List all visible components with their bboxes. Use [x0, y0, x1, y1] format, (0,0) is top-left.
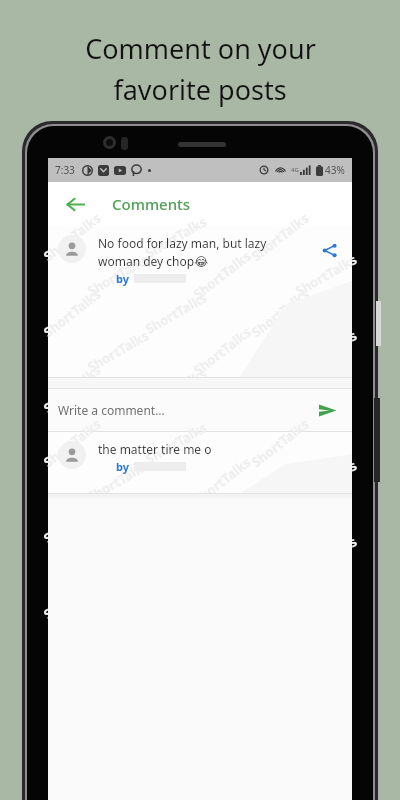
staticText: ShortTalks [40, 285, 104, 341]
staticText: Comment on your [85, 30, 316, 67]
button[interactable]: Share [314, 235, 344, 265]
staticText: ShortTalks [248, 285, 312, 341]
staticText: ShortTalks [84, 456, 152, 506]
button[interactable]: Back [58, 187, 92, 221]
staticText: ShortTalks [292, 326, 360, 376]
staticText: ShortTalks [190, 247, 254, 303]
staticText: favorite posts [113, 71, 287, 108]
staticText: ShortTalks [190, 323, 254, 379]
staticText: ShortTalks [248, 209, 312, 265]
staticText: by [116, 459, 130, 474]
staticText: ShortTalks [292, 250, 360, 300]
button[interactable]: Send [312, 395, 342, 425]
staticText: 4G [291, 166, 299, 174]
button[interactable]: ShortTalks [48, 432, 352, 494]
button[interactable]: ShortTalks [48, 226, 352, 378]
staticText: by [116, 271, 130, 286]
staticText: ShortTalks [248, 415, 312, 471]
staticText: ShortTalks [40, 361, 104, 417]
staticText: ShortTalks [142, 212, 210, 262]
staticText: ShortTalks [40, 567, 104, 623]
staticText: ShortTalks [40, 209, 104, 265]
button[interactable]: Write a comment... [48, 388, 352, 432]
staticText: Write a comment... [58, 402, 165, 418]
staticText: ShortTalks [248, 361, 312, 417]
staticText: ShortTalks [142, 288, 210, 338]
staticText: No food for lazy man, but lazy [98, 235, 267, 251]
staticText: 43% [325, 163, 345, 177]
staticText: ShortTalks [40, 491, 104, 547]
staticText: ShortTalks [84, 326, 152, 376]
staticText: ShortTalks [248, 491, 312, 547]
staticText: ShortTalks [142, 418, 210, 468]
staticText: 7:33 [55, 163, 75, 177]
staticText: ShortTalks [292, 532, 360, 582]
staticText: the matter tire me o [98, 441, 212, 457]
staticText: ShortTalks [142, 364, 210, 414]
staticText: ShortTalks [40, 415, 104, 471]
staticText: Comments [112, 194, 191, 214]
staticText: woman dey chop😂 [98, 253, 209, 269]
staticText: ShortTalks [190, 453, 254, 509]
staticText: ShortTalks [84, 250, 152, 300]
staticText: ShortTalks [292, 456, 360, 506]
